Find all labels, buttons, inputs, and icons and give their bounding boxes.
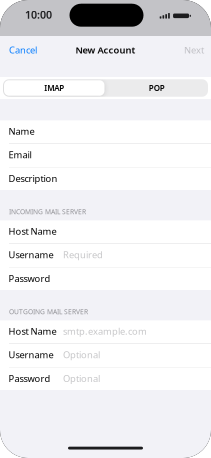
staticText: Password: [8, 272, 50, 284]
staticText: Cancel: [9, 44, 37, 56]
staticText: New Account: [75, 44, 135, 56]
staticText: Name: [8, 125, 34, 137]
staticText: Username: [8, 348, 53, 361]
button[interactable]: Cancel: [0, 39, 43, 61]
staticText: Email: [8, 148, 31, 161]
staticText: smtp.example.com: [63, 325, 147, 337]
staticText: Next: [184, 44, 204, 56]
button[interactable]: Host Name: [0, 220, 211, 243]
staticText: Optional: [63, 348, 100, 361]
button[interactable]: Description: [0, 168, 211, 191]
staticText: Optional: [63, 372, 100, 384]
staticText: INCOMING MAIL SERVER: [9, 207, 86, 216]
button[interactable]: Next: [178, 39, 211, 61]
button[interactable]: POP: [105, 79, 208, 97]
staticText: Required: [63, 248, 103, 261]
button[interactable]: Password: [0, 268, 211, 291]
button[interactable]: IMAP: [3, 79, 105, 97]
button[interactable]: Username: [0, 244, 211, 267]
button[interactable]: Email: [0, 144, 211, 167]
staticText: Password: [8, 372, 50, 384]
staticText: OUTGOING MAIL SERVER: [9, 307, 88, 316]
button[interactable]: Password: [0, 368, 211, 391]
button[interactable]: Name: [0, 120, 211, 143]
button[interactable]: Username: [0, 344, 211, 367]
staticText: Description: [8, 172, 57, 184]
staticText: IMAP: [44, 83, 64, 93]
staticText: 10:00: [25, 7, 52, 22]
staticText: Username: [8, 248, 53, 261]
staticText: POP: [149, 83, 165, 93]
staticText: Host Name: [8, 325, 56, 337]
staticText: Host Name: [8, 225, 56, 237]
button[interactable]: Host Name: [0, 320, 211, 343]
